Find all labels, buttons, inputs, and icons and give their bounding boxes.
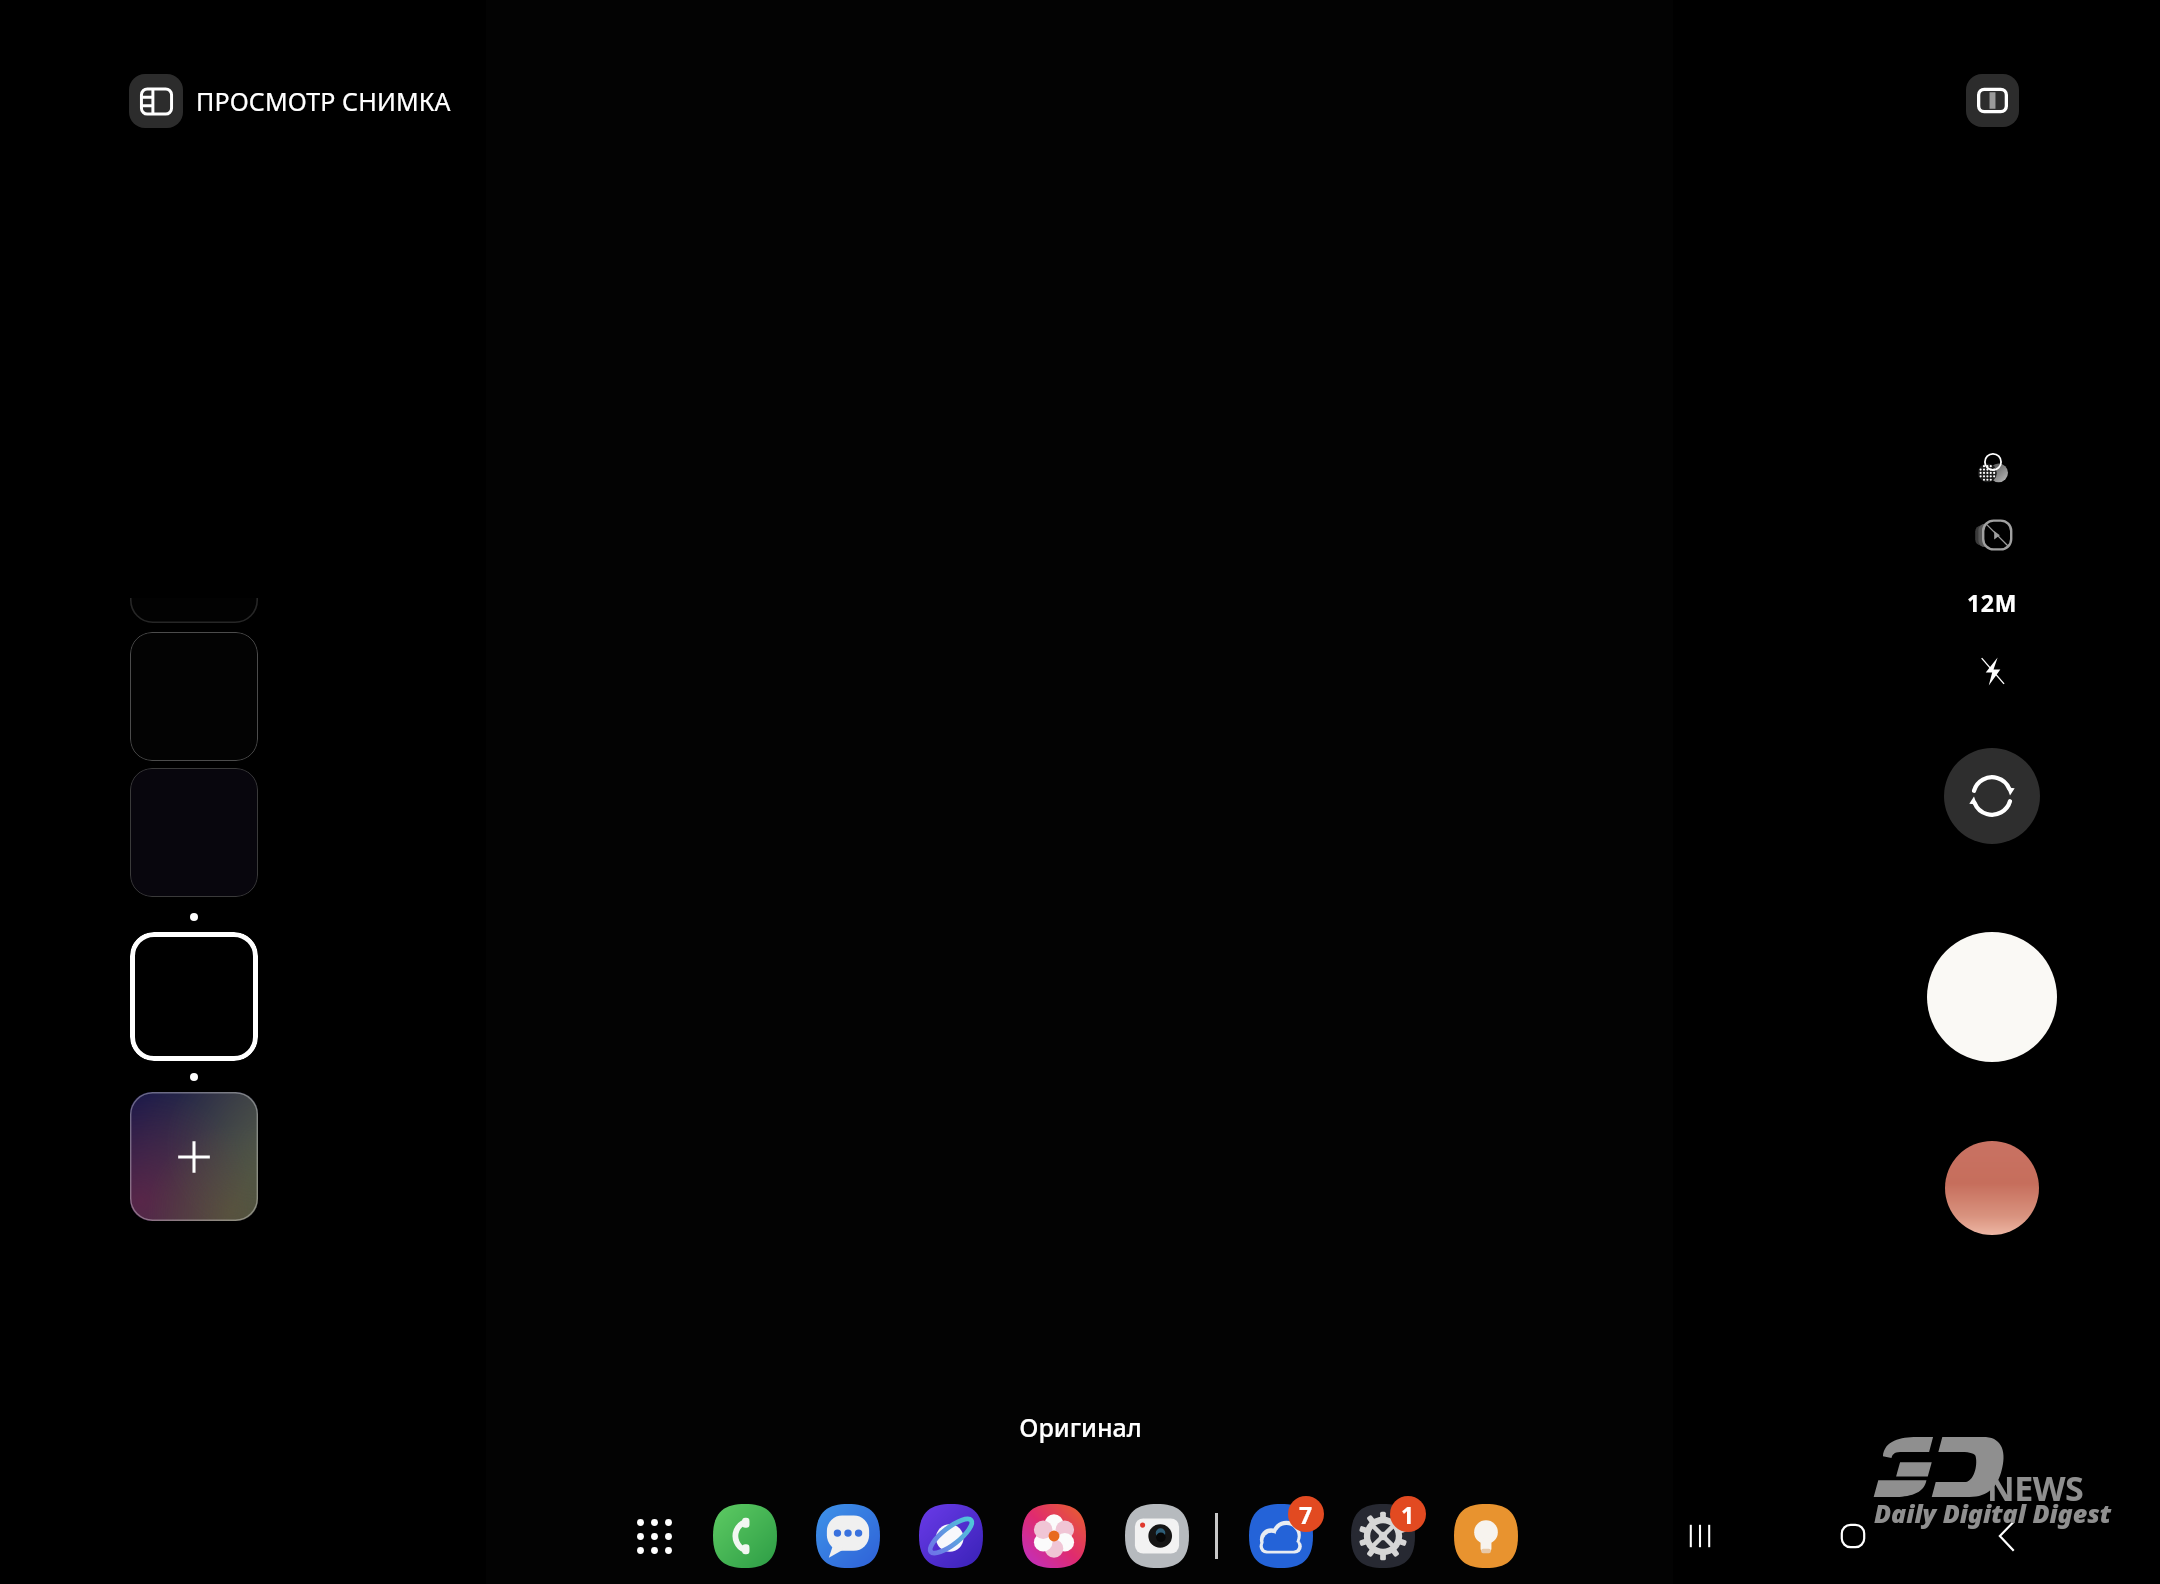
staticText: ПРОСМОТР СНИМКА: [196, 84, 451, 118]
button[interactable]: Phone: [701, 1492, 789, 1580]
button[interactable]: 12M: [1932, 577, 2052, 627]
button[interactable]: Filter 2: [130, 768, 258, 897]
staticText: 12M: [1967, 587, 2018, 618]
staticText: Оригинал: [1019, 1410, 1142, 1444]
button[interactable]: Settings: [1339, 1492, 1427, 1580]
button[interactable]: Effects: [1958, 433, 2026, 501]
staticText: 1: [1401, 1499, 1415, 1530]
button[interactable]: Camera: [1113, 1492, 1201, 1580]
button[interactable]: Original filter: [130, 932, 258, 1061]
staticText: 7: [1299, 1499, 1313, 1530]
staticText: NEWS: [1987, 1465, 2084, 1511]
button[interactable]: Messages: [804, 1492, 892, 1580]
button[interactable]: Filter: [130, 598, 258, 623]
button[interactable]: Motion photo off: [1958, 501, 2026, 569]
button[interactable]: Browser: [907, 1492, 995, 1580]
button[interactable]: Switch camera: [1944, 748, 2040, 844]
button[interactable]: Shutter: [1927, 932, 2057, 1062]
button[interactable]: Home: [1809, 1492, 1897, 1580]
button[interactable]: Gallery: [1010, 1492, 1098, 1580]
button[interactable]: Add filter: [130, 1092, 258, 1221]
button[interactable]: Flash off: [1958, 637, 2026, 705]
staticText: Daily Digital Digest: [1874, 1496, 2112, 1530]
button[interactable]: Bixby: [1442, 1492, 1530, 1580]
button[interactable]: ПРОСМОТР СНИМКА: [129, 74, 451, 128]
button[interactable]: Filter 1: [130, 632, 258, 761]
button[interactable]: Gallery: [1945, 1141, 2039, 1235]
button[interactable]: Cloud: [1237, 1492, 1325, 1580]
button[interactable]: Aspect ratio: [1966, 74, 2019, 127]
button[interactable]: Apps: [614, 1496, 694, 1576]
button[interactable]: Back: [1963, 1492, 2051, 1580]
button[interactable]: Recents: [1656, 1492, 1744, 1580]
